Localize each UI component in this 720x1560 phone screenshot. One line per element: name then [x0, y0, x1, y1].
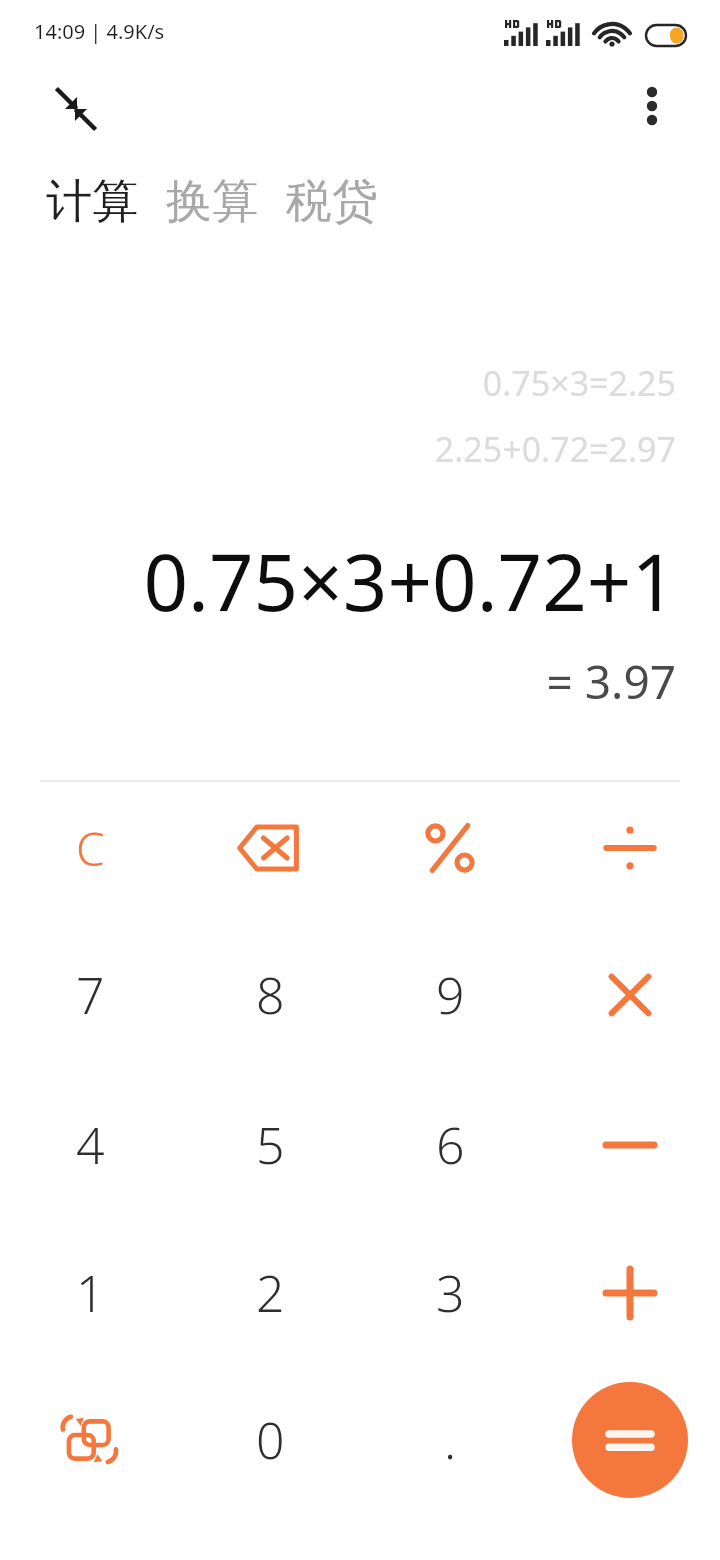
- staticText: 2.25+0.72=2.97: [434, 426, 676, 472]
- button[interactable]: 0: [180, 1366, 360, 1514]
- button[interactable]: Plus: [540, 1219, 720, 1367]
- staticText: = 3.97: [546, 650, 676, 713]
- button[interactable]: 计算: [44, 169, 140, 235]
- staticText: C: [76, 817, 105, 880]
- button[interactable]: Minus: [540, 1071, 720, 1219]
- button[interactable]: 3: [360, 1219, 540, 1367]
- staticText: 税贷: [286, 173, 378, 231]
- button[interactable]: More options: [618, 76, 686, 136]
- staticText: 1: [76, 1259, 105, 1327]
- staticText: 5: [256, 1111, 285, 1179]
- staticText: 6: [436, 1111, 465, 1179]
- button[interactable]: Multiply: [540, 921, 720, 1069]
- staticText: 0: [256, 1406, 285, 1474]
- staticText: 2: [256, 1259, 285, 1327]
- staticText: 0.75×3=2.25: [482, 360, 676, 406]
- button[interactable]: Divide: [540, 774, 720, 922]
- staticText: 4: [76, 1111, 105, 1179]
- staticText: 8: [256, 961, 285, 1029]
- button[interactable]: C: [0, 774, 180, 922]
- staticText: 9: [436, 961, 465, 1029]
- button[interactable]: 9: [360, 921, 540, 1069]
- staticText: 0.75×3+0.72+1: [143, 528, 676, 634]
- button[interactable]: 8: [180, 921, 360, 1069]
- button[interactable]: 换算: [164, 169, 260, 235]
- button[interactable]: 7: [0, 921, 180, 1069]
- button[interactable]: 1: [0, 1219, 180, 1367]
- staticText: 3: [436, 1259, 465, 1327]
- button[interactable]: Unit convert: [0, 1366, 180, 1514]
- staticText: 7: [76, 961, 105, 1029]
- button[interactable]: 4: [0, 1071, 180, 1219]
- staticText: .: [444, 1406, 457, 1474]
- button[interactable]: Backspace: [180, 774, 360, 922]
- staticText: 14:09 | 4.9K/s: [34, 18, 165, 45]
- button[interactable]: .: [360, 1366, 540, 1514]
- button[interactable]: Percent: [360, 774, 540, 922]
- staticText: 计算: [46, 173, 138, 231]
- button[interactable]: Equals: [572, 1382, 688, 1498]
- button[interactable]: 2: [180, 1219, 360, 1367]
- staticText: 换算: [166, 173, 258, 231]
- button[interactable]: Collapse: [38, 76, 102, 136]
- button[interactable]: 税贷: [284, 169, 380, 235]
- button[interactable]: 5: [180, 1071, 360, 1219]
- button[interactable]: 6: [360, 1071, 540, 1219]
